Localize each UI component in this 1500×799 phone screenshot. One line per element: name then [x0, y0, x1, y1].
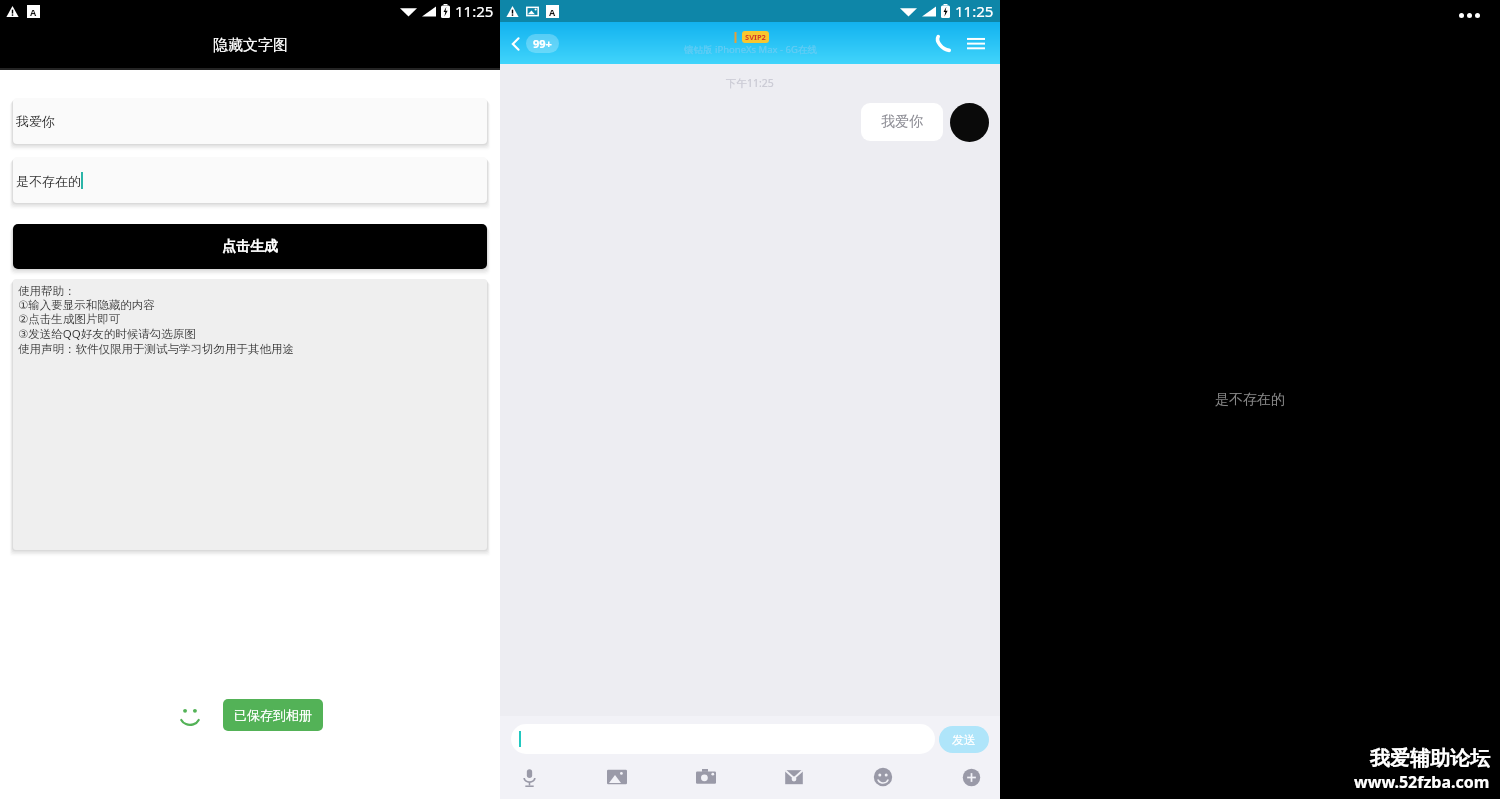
button[interactable]: Emoji	[866, 760, 900, 794]
staticText: SVIP2	[745, 32, 766, 42]
staticText: 下午11:25	[726, 76, 774, 90]
staticText: 是不存在的	[1215, 391, 1285, 409]
staticText: 我爱辅助论坛	[1370, 746, 1490, 771]
staticText: A	[549, 6, 556, 18]
staticText: 我爱你	[881, 113, 923, 131]
staticText: 使用帮助：	[18, 284, 76, 298]
button[interactable]: Voice message	[512, 760, 546, 794]
staticText: 发送	[952, 732, 976, 747]
button[interactable]: Voice call	[930, 30, 956, 56]
staticText: 点击生成	[222, 238, 278, 256]
button[interactable]: 我爱你	[861, 103, 943, 141]
button[interactable]: Red packet	[777, 760, 811, 794]
button[interactable]: 发送	[939, 726, 989, 753]
staticText: A	[30, 6, 37, 18]
staticText: 镶钻版 iPhoneXs Max - 6G在线	[684, 43, 817, 56]
button[interactable]: More	[954, 760, 988, 794]
button[interactable]: Menu	[963, 30, 989, 56]
staticText: ②点击生成图片即可	[18, 312, 121, 326]
staticText: 我爱你	[16, 113, 55, 129]
button[interactable]	[511, 724, 935, 754]
staticText: ③发送给QQ好友的时候请勾选原图	[18, 326, 196, 342]
button[interactable]: Gallery	[600, 760, 634, 794]
staticText: 99+	[533, 36, 552, 51]
staticText: 11:25	[455, 1, 494, 21]
button[interactable]: 点击生成	[13, 224, 487, 269]
staticText: 隐藏文字图	[213, 36, 288, 55]
staticText: ①输入要显示和隐藏的内容	[18, 298, 155, 312]
button[interactable]: Back, 99+ unread	[508, 34, 559, 53]
button[interactable]: Contact avatar	[950, 103, 989, 142]
staticText: 11:25	[955, 1, 994, 21]
button[interactable]: 已保存到相册	[223, 699, 323, 731]
staticText: 是不存在的	[16, 173, 81, 189]
staticText: www.52fzba.com	[1354, 771, 1490, 793]
button[interactable]: More options	[1459, 13, 1480, 18]
button[interactable]: Camera	[689, 760, 723, 794]
button[interactable]: 我爱你	[13, 98, 487, 144]
staticText: 已保存到相册	[234, 707, 312, 723]
button[interactable]: 是不存在的	[13, 157, 487, 203]
staticText: 使用声明：软件仅限用于测试与学习切勿用于其他用途	[18, 342, 294, 356]
